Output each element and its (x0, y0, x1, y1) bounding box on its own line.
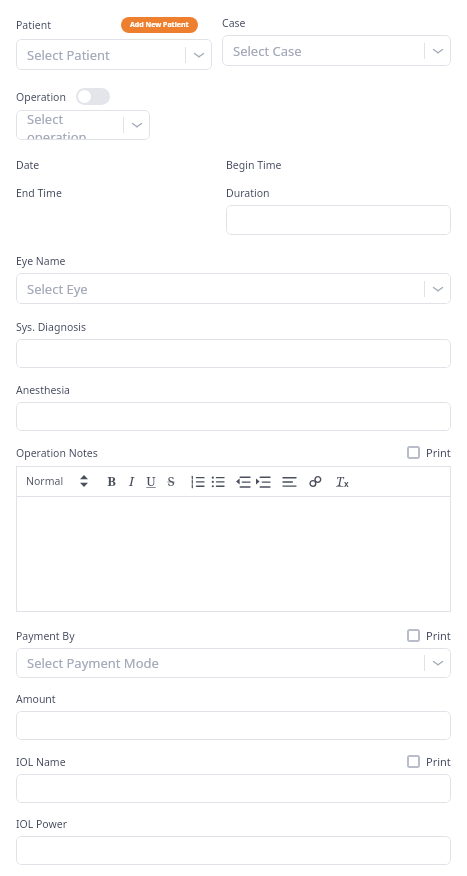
button[interactable]: Insert link (306, 471, 324, 491)
staticText: Select Payment Mode (27, 654, 424, 672)
staticText: Operation (16, 90, 66, 104)
button[interactable]: Bold (102, 471, 120, 491)
staticText: Amount (16, 692, 56, 706)
staticText: Begin Time (226, 158, 282, 172)
button[interactable]: Select Payment Mode (16, 648, 451, 678)
staticText: Duration (226, 186, 270, 200)
button[interactable]: Print (407, 754, 451, 769)
button[interactable] (16, 497, 451, 612)
staticText: Eye Name (16, 254, 66, 268)
staticText: T (336, 473, 344, 489)
button[interactable] (226, 205, 451, 235)
button[interactable]: Italic (122, 471, 140, 491)
staticText: Select Case (233, 42, 424, 60)
button[interactable]: Select Patient (16, 39, 212, 70)
button[interactable]: Strikethrough (162, 471, 180, 491)
staticText: Sys. Diagnosis (16, 320, 87, 334)
button[interactable]: Print (407, 445, 451, 460)
button[interactable]: Select Eye (16, 273, 451, 304)
staticText: B (107, 472, 116, 490)
staticText: S (167, 472, 175, 490)
button[interactable]: Underline (142, 471, 160, 491)
staticText: Select operation (27, 110, 123, 140)
staticText: Normal (26, 474, 64, 488)
staticText: Select Eye (27, 280, 424, 298)
button[interactable]: Align (280, 471, 298, 491)
staticText: IOL Name (16, 755, 407, 769)
button[interactable]: Clear formatting (332, 471, 352, 491)
button[interactable] (16, 402, 451, 431)
button[interactable] (16, 836, 451, 865)
staticText: Operation Notes (16, 446, 407, 460)
staticText: Patient (16, 18, 51, 32)
button[interactable]: Toggle operation (76, 88, 110, 105)
button[interactable]: Add New Patient (121, 17, 198, 33)
button[interactable]: Decrease indent (234, 471, 252, 491)
button[interactable] (16, 774, 451, 803)
button[interactable]: Numbered list (188, 471, 206, 491)
button[interactable]: Select Case (222, 35, 451, 66)
staticText: I (129, 472, 134, 490)
staticText: Print (426, 754, 451, 769)
button[interactable] (16, 339, 451, 368)
button[interactable] (16, 711, 451, 740)
staticText: End Time (16, 186, 62, 200)
button[interactable]: Normal (24, 474, 66, 488)
staticText: Case (222, 16, 246, 30)
button[interactable]: Increase indent (254, 471, 272, 491)
staticText: U (146, 472, 156, 490)
staticText: Anesthesia (16, 383, 70, 397)
button[interactable]: Select operation (16, 110, 150, 140)
staticText: Add New Patient (130, 20, 189, 30)
staticText: Select Patient (27, 46, 185, 64)
staticText: x (344, 478, 349, 489)
staticText: Print (426, 628, 451, 643)
staticText: IOL Power (16, 817, 67, 831)
staticText: Date (16, 158, 40, 172)
button[interactable]: Print (407, 628, 451, 643)
staticText: Payment By (16, 629, 407, 643)
staticText: Print (426, 445, 451, 460)
button[interactable]: Change heading (76, 472, 92, 490)
button[interactable]: Bulleted list (208, 471, 226, 491)
